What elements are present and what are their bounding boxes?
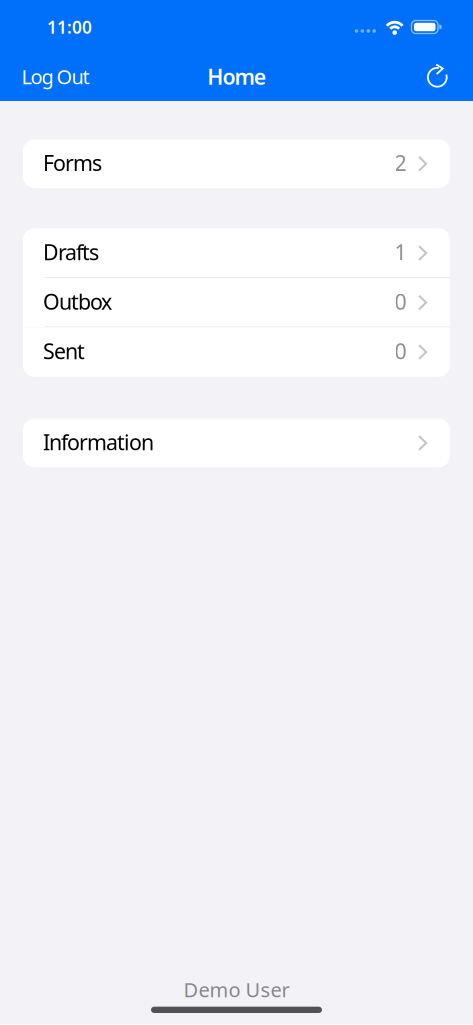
staticText: 0 (394, 337, 406, 365)
staticText: 0 (394, 287, 406, 316)
button[interactable]: Sent (23, 327, 450, 377)
button[interactable]: Refresh (424, 64, 473, 90)
staticText: Forms (43, 149, 102, 177)
button[interactable]: Drafts (23, 228, 450, 278)
staticText: Home (207, 62, 266, 91)
staticText: Sent (43, 337, 85, 365)
staticText: 11:00 (47, 15, 92, 38)
staticText: 2 (394, 149, 406, 177)
button[interactable]: Information (23, 419, 450, 467)
button[interactable]: Outbox (23, 278, 450, 327)
staticText: 1 (394, 238, 406, 266)
staticText: Information (43, 428, 154, 456)
staticText: Demo User (183, 976, 289, 1003)
button[interactable]: Forms (23, 139, 450, 188)
staticText: Outbox (43, 287, 112, 316)
staticText: Drafts (43, 238, 99, 266)
button[interactable]: Log Out (0, 64, 89, 91)
staticText: Log Out (21, 63, 89, 90)
